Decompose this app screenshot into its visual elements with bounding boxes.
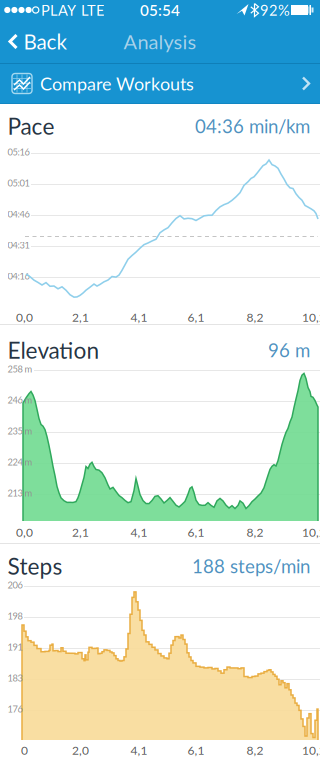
staticText: 4,1 [130, 743, 147, 757]
staticText: 04:31 [7, 239, 29, 251]
staticText: 235 m [7, 425, 32, 437]
staticText: 183 [7, 672, 22, 684]
staticText: 10,2 [302, 310, 320, 324]
staticText: 8,2 [246, 525, 263, 539]
staticText: PLAY [41, 1, 76, 19]
staticText: 10,2 [302, 743, 320, 757]
staticText: 2,1 [72, 310, 89, 324]
staticText: 6,1 [187, 525, 204, 539]
staticText: 4,1 [130, 525, 147, 539]
staticText: Steps [7, 552, 62, 580]
staticText: 92% [260, 1, 290, 19]
staticText: Elevation [7, 336, 99, 364]
staticText: 05:01 [7, 177, 29, 189]
staticText: 2,1 [72, 525, 89, 539]
staticText: 6,1 [187, 743, 204, 757]
button[interactable]: Compare Workouts [0, 64, 320, 103]
staticText: 4,1 [130, 310, 147, 324]
staticText: Compare Workouts [40, 73, 194, 94]
staticText: 04:36 min/km [195, 115, 310, 137]
staticText: 8,2 [246, 743, 263, 757]
staticText: 04:16 [7, 270, 29, 282]
staticText: 2,0 [72, 743, 89, 757]
staticText: 6,1 [187, 310, 204, 324]
staticText: 176 [7, 703, 22, 715]
staticText: Pace [7, 112, 54, 140]
staticText: Analysis [123, 29, 196, 53]
staticText: 04:46 [7, 208, 29, 220]
staticText: LTE [81, 1, 104, 19]
staticText: 96 m [268, 339, 310, 361]
staticText: 206 [7, 579, 22, 591]
staticText: 10,2 [302, 525, 320, 539]
staticText: 0,0 [16, 310, 33, 324]
staticText: 0,0 [16, 525, 33, 539]
staticText: Back [23, 29, 66, 54]
staticText: 258 m [7, 363, 32, 375]
staticText: 8,2 [246, 310, 263, 324]
staticText: 198 [7, 610, 22, 622]
staticText: 191 [7, 641, 22, 653]
button[interactable]: Back [8, 19, 66, 63]
staticText: 188 steps/min [192, 555, 310, 577]
staticText: 224 m [7, 456, 32, 468]
staticText: 0 [21, 743, 28, 757]
staticText: 05:54 [140, 1, 180, 19]
staticText: 246 m [7, 394, 32, 406]
staticText: 05:16 [7, 146, 29, 158]
staticText: 213 m [7, 487, 32, 499]
